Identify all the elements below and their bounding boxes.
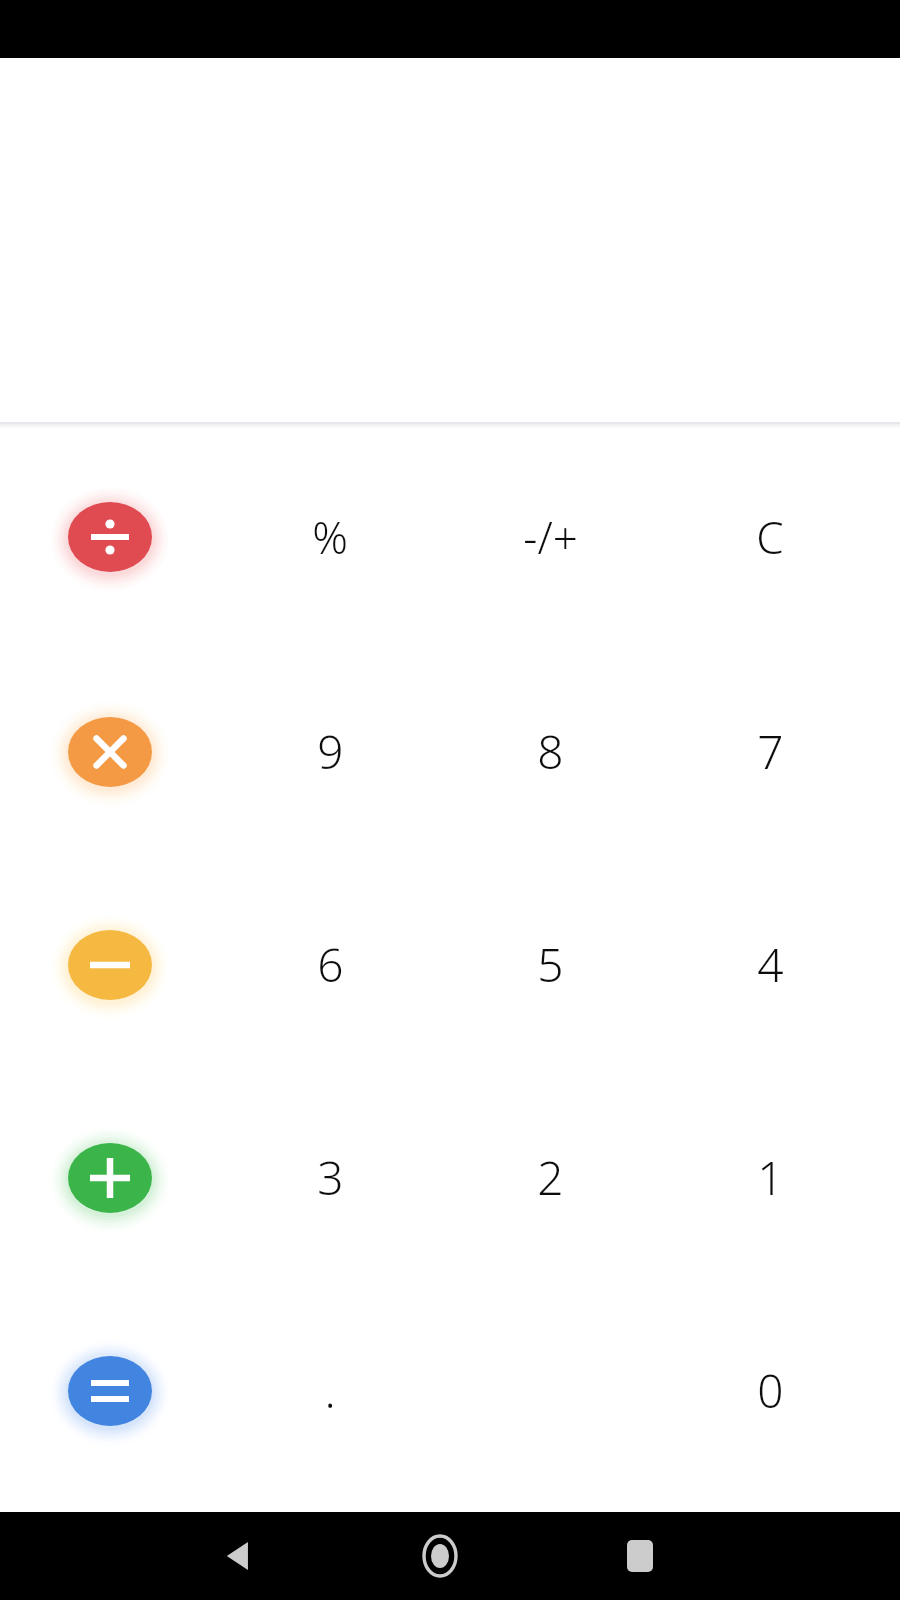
- button[interactable]: 9: [220, 645, 440, 858]
- button[interactable]: 5: [440, 858, 660, 1071]
- button[interactable]: %: [220, 428, 440, 645]
- staticText: %: [312, 507, 348, 567]
- button[interactable]: -/+: [440, 428, 660, 645]
- staticText: 5: [537, 933, 564, 996]
- staticText: 0: [757, 1359, 784, 1422]
- button[interactable]: 2: [440, 1071, 660, 1284]
- button[interactable]: Back: [140, 1512, 340, 1600]
- button[interactable]: C: [660, 428, 880, 645]
- button[interactable]: 8: [440, 645, 660, 858]
- button[interactable]: 1: [660, 1071, 880, 1284]
- staticText: 9: [317, 720, 344, 783]
- staticText: C: [756, 507, 784, 567]
- button[interactable]: Multiply: [25, 677, 195, 827]
- staticText: 6: [317, 933, 344, 996]
- staticText: 4: [757, 933, 784, 996]
- staticText: 1: [757, 1146, 784, 1209]
- button[interactable]: Subtract: [25, 890, 195, 1040]
- button[interactable]: 6: [220, 858, 440, 1071]
- button[interactable]: 3: [220, 1071, 440, 1284]
- button[interactable]: Home: [340, 1512, 540, 1600]
- button[interactable]: Divide: [25, 462, 195, 612]
- staticText: 7: [757, 720, 784, 783]
- button[interactable]: 7: [660, 645, 880, 858]
- button[interactable]: 0: [660, 1284, 880, 1497]
- staticText: -/+: [523, 507, 578, 567]
- button[interactable]: 4: [660, 858, 880, 1071]
- staticText: 8: [537, 720, 564, 783]
- button[interactable]: .: [220, 1284, 440, 1497]
- button[interactable]: Equals: [25, 1316, 195, 1466]
- staticText: 3: [317, 1146, 344, 1209]
- button[interactable]: Recent apps: [540, 1512, 740, 1600]
- staticText: .: [324, 1359, 336, 1422]
- staticText: 2: [537, 1146, 564, 1209]
- button[interactable]: Add: [25, 1103, 195, 1253]
